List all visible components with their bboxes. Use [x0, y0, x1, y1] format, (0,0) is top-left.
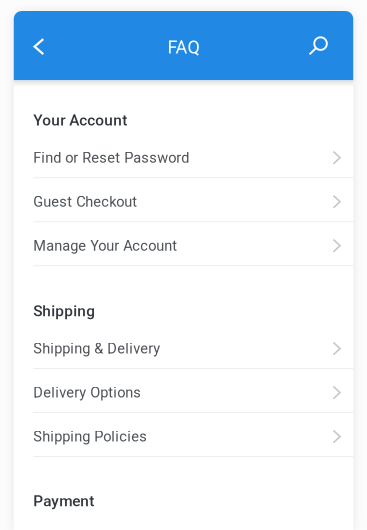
button[interactable]: Manage Your Account — [14, 222, 353, 266]
button[interactable]: Shipping Policies — [14, 413, 353, 457]
button[interactable]: Back — [18, 25, 60, 69]
staticText: FAQ — [167, 37, 199, 58]
button[interactable]: Delivery Options — [14, 369, 353, 413]
staticText: Shipping & Delivery — [33, 340, 160, 357]
staticText: Find or Reset Password — [33, 149, 189, 166]
staticText: Shipping Policies — [33, 428, 147, 445]
staticText: Delivery Options — [33, 384, 141, 401]
staticText: Manage Your Account — [33, 237, 177, 254]
button[interactable]: Find or Reset Password — [14, 134, 353, 178]
staticText: Guest Checkout — [33, 193, 137, 210]
staticText: Payment — [33, 492, 94, 510]
button[interactable]: Guest Checkout — [14, 178, 353, 222]
staticText: Your Account — [33, 111, 127, 129]
staticText: Shipping — [33, 302, 95, 320]
button[interactable]: Search — [297, 25, 339, 69]
button[interactable]: Shipping & Delivery — [14, 325, 353, 369]
